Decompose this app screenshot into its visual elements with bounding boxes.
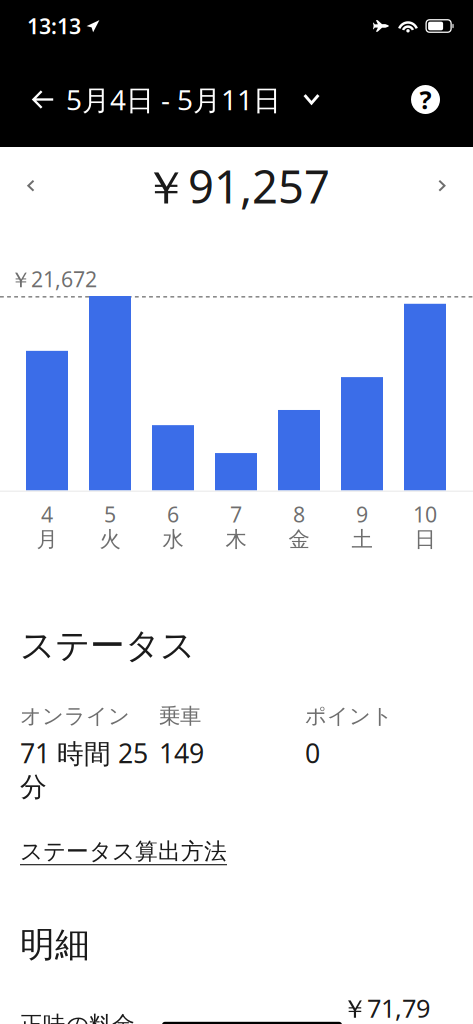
button[interactable]: Previous week [0, 164, 62, 208]
staticText: ステータス [20, 624, 195, 667]
staticText: 8 [293, 500, 305, 528]
staticText: オンライン [20, 703, 130, 729]
button[interactable]: Next week [411, 164, 473, 208]
staticText: 火 [99, 526, 120, 552]
staticText: 0 [305, 735, 320, 771]
staticText: ポイント [305, 703, 393, 729]
staticText: 7 [230, 500, 242, 528]
staticText: ￥71,796 [342, 991, 430, 1024]
staticText: ? [419, 83, 431, 116]
staticText: 6 [167, 500, 179, 528]
staticText: 5月4日 - 5月11日 [66, 81, 281, 118]
button[interactable]: 5月4日 - 5月11日 [66, 73, 320, 125]
staticText: 水 [162, 526, 183, 552]
button[interactable]: Back [21, 73, 66, 125]
staticText: 149 [159, 735, 204, 771]
staticText: 5 [104, 500, 116, 528]
staticText: 月 [36, 526, 57, 552]
staticText: ステータス算出方法 [20, 838, 227, 865]
staticText: 13:13 [27, 12, 81, 40]
staticText: ￥91,257 [143, 156, 330, 216]
button[interactable]: ステータス算出方法 [20, 839, 227, 863]
staticText: 日 [414, 526, 435, 552]
staticText: 71 時間 25 [20, 735, 148, 771]
staticText: 分 [20, 771, 47, 803]
staticText: 10 [413, 500, 437, 528]
button[interactable]: Help [404, 73, 447, 125]
staticText: ￥21,672 [10, 265, 97, 293]
staticText: 土 [351, 526, 372, 552]
staticText: 木 [225, 526, 246, 552]
staticText: 乗車 [159, 703, 201, 729]
staticText: 明細 [20, 923, 90, 966]
staticText: 4 [41, 500, 53, 528]
staticText: 9 [356, 500, 368, 528]
staticText: 金 [288, 526, 309, 552]
staticText: 正味の料金 [20, 1011, 135, 1024]
